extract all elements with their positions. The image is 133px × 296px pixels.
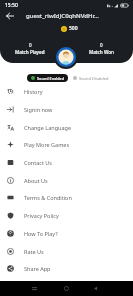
staticText: Play More Games	[24, 141, 70, 148]
staticText: Terms & Condition	[24, 194, 72, 201]
staticText: 15:50	[5, 2, 18, 9]
button[interactable]: Sound Disabled	[73, 74, 109, 82]
button[interactable]: About Us	[0, 172, 133, 189]
button[interactable]: Terms & Condition	[0, 189, 133, 206]
button[interactable]: Go back	[85, 282, 105, 295]
staticText: 0	[29, 42, 32, 48]
button[interactable]: Privacy Policy	[0, 207, 133, 224]
button[interactable]: Play More Games	[0, 136, 133, 153]
staticText: 500	[69, 25, 78, 32]
button[interactable]: Rate Us	[0, 243, 133, 260]
staticText: Match Played	[15, 49, 45, 55]
button[interactable]: History	[0, 83, 133, 100]
staticText: 0	[100, 42, 103, 48]
button[interactable]: Back	[3, 9, 17, 23]
staticText: guest_riwIdJC0qhNVdHr...	[26, 12, 108, 20]
staticText: Signin now	[24, 106, 53, 113]
staticText: Privacy Policy	[24, 212, 59, 219]
staticText: History	[24, 88, 43, 95]
button[interactable]: How To Play?	[0, 225, 133, 242]
staticText: Rate Us	[24, 248, 44, 255]
staticText: How To Play?	[24, 230, 58, 237]
staticText: Share App	[24, 265, 51, 272]
button[interactable]: Profile avatar	[54, 45, 78, 69]
button[interactable]: Change Language	[0, 119, 133, 136]
staticText: Contact Us	[24, 159, 52, 166]
staticText: Change Language	[24, 124, 71, 131]
button[interactable]: Contact Us	[0, 154, 133, 171]
button[interactable]: Recents	[24, 282, 44, 295]
button[interactable]: Home	[56, 282, 76, 295]
staticText: Sound Enabled	[37, 76, 65, 81]
staticText: Match Won	[89, 49, 114, 55]
button[interactable]: Sound Enabled	[27, 74, 68, 82]
staticText: About Us	[24, 177, 48, 184]
staticText: Sound Disabled	[79, 76, 109, 81]
button[interactable]: Signin now	[0, 101, 133, 118]
button[interactable]: Share App	[0, 260, 133, 277]
